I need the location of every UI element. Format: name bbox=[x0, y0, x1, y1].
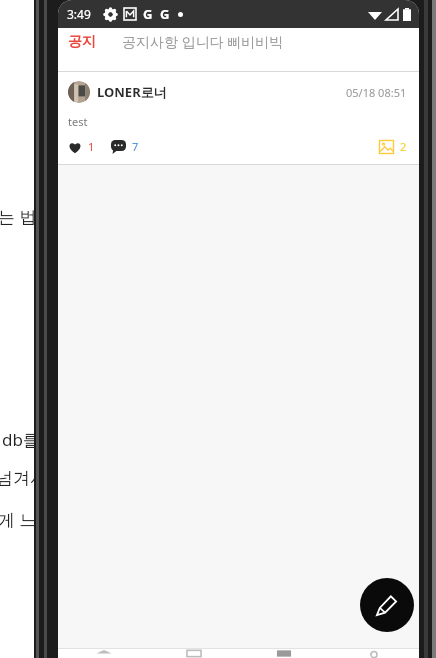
staticText: 공지사항 입니다 삐비비빅 bbox=[122, 32, 284, 51]
staticText: 는 법 bbox=[0, 205, 37, 228]
button[interactable]: Chat bbox=[239, 649, 329, 658]
staticText: 게 느 bbox=[0, 508, 37, 531]
button[interactable]: Home bbox=[58, 649, 149, 658]
staticText: 05/18 08:51 bbox=[346, 85, 407, 100]
button[interactable]: Board bbox=[149, 649, 239, 658]
staticText: 2 bbox=[400, 139, 407, 154]
staticText: 공지 bbox=[68, 33, 96, 51]
staticText: G bbox=[160, 5, 170, 23]
button[interactable]: 공지사항 입니다 삐비비빅 bbox=[122, 28, 284, 55]
button[interactable]: Profile bbox=[329, 649, 419, 658]
staticText: LONER로너 bbox=[97, 83, 167, 101]
staticText: 3:49 bbox=[67, 6, 91, 22]
button[interactable]: 공지 bbox=[66, 29, 98, 55]
button[interactable]: Comments bbox=[111, 139, 139, 154]
staticText: test bbox=[68, 114, 88, 129]
staticText: 넘겨서 bbox=[0, 468, 47, 489]
button[interactable]: Like bbox=[68, 139, 95, 154]
button[interactable]: Compose bbox=[360, 578, 414, 632]
staticText: 1 bbox=[88, 139, 95, 154]
button[interactable]: Images bbox=[379, 139, 407, 154]
staticText: 7 bbox=[132, 139, 139, 154]
staticText: db를 bbox=[2, 428, 40, 451]
staticText: G bbox=[143, 5, 153, 23]
button[interactable]: LONER로너 bbox=[58, 72, 419, 165]
